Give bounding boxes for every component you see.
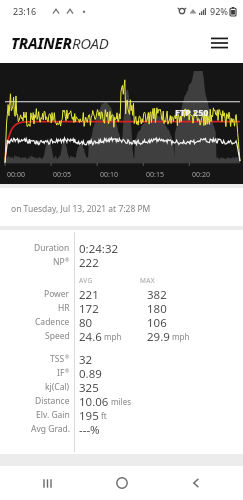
- button[interactable]: Back: [169, 466, 223, 500]
- staticText: 0.89: [79, 366, 102, 380]
- staticText: 23:16: [13, 5, 37, 17]
- staticText: 00:15: [146, 170, 164, 180]
- staticText: 172: [79, 301, 99, 315]
- staticText: ROAD: [72, 33, 109, 53]
- staticText: mph: [170, 331, 190, 342]
- staticText: 221: [79, 287, 99, 301]
- staticText: 00:00: [7, 170, 25, 180]
- staticText: 382: [147, 287, 167, 301]
- staticText: ®: [65, 257, 70, 264]
- staticText: 106: [147, 315, 167, 329]
- staticText: 0:24:32: [79, 241, 119, 255]
- staticText: ®: [65, 368, 70, 375]
- staticText: HR: [58, 302, 70, 314]
- staticText: miles: [109, 396, 132, 407]
- staticText: TRAINER: [11, 33, 72, 53]
- staticText: 00:05: [53, 170, 71, 180]
- staticText: 00:20: [192, 170, 210, 180]
- staticText: 222: [79, 255, 99, 269]
- button[interactable]: Recent apps: [20, 466, 74, 500]
- staticText: 80: [79, 315, 93, 329]
- staticText: MAX: [140, 276, 156, 285]
- staticText: 24.6: [79, 329, 102, 343]
- staticText: Avg Grad.: [31, 423, 70, 435]
- staticText: 180: [147, 301, 167, 315]
- staticText: 195: [79, 408, 99, 422]
- staticText: FTP 250: [175, 106, 209, 118]
- button[interactable]: Menu: [202, 26, 236, 60]
- staticText: 32: [79, 352, 93, 366]
- staticText: 325: [79, 380, 99, 394]
- staticText: mph: [102, 331, 122, 342]
- staticText: Power: [44, 288, 70, 300]
- staticText: ®: [65, 354, 70, 361]
- staticText: Duration: [34, 242, 70, 254]
- staticText: IF: [57, 367, 65, 379]
- staticText: 92%: [210, 5, 228, 17]
- staticText: kj(Cal): [45, 381, 70, 393]
- staticText: 00:10: [100, 170, 118, 180]
- staticText: Distance: [35, 395, 70, 407]
- staticText: ---%: [79, 422, 100, 436]
- staticText: Elv. Gain: [36, 409, 70, 421]
- staticText: 29.9: [147, 329, 170, 343]
- staticText: NP: [53, 256, 65, 268]
- staticText: Cadence: [35, 316, 70, 328]
- staticText: Speed: [45, 330, 70, 342]
- staticText: ft: [99, 410, 107, 421]
- staticText: TSS: [50, 353, 65, 365]
- staticText: 10.06: [79, 394, 109, 408]
- button[interactable]: Home: [95, 466, 149, 500]
- staticText: on Tuesday, Jul 13, 2021 at 7:28 PM: [11, 203, 151, 215]
- staticText: AVG: [79, 276, 93, 285]
